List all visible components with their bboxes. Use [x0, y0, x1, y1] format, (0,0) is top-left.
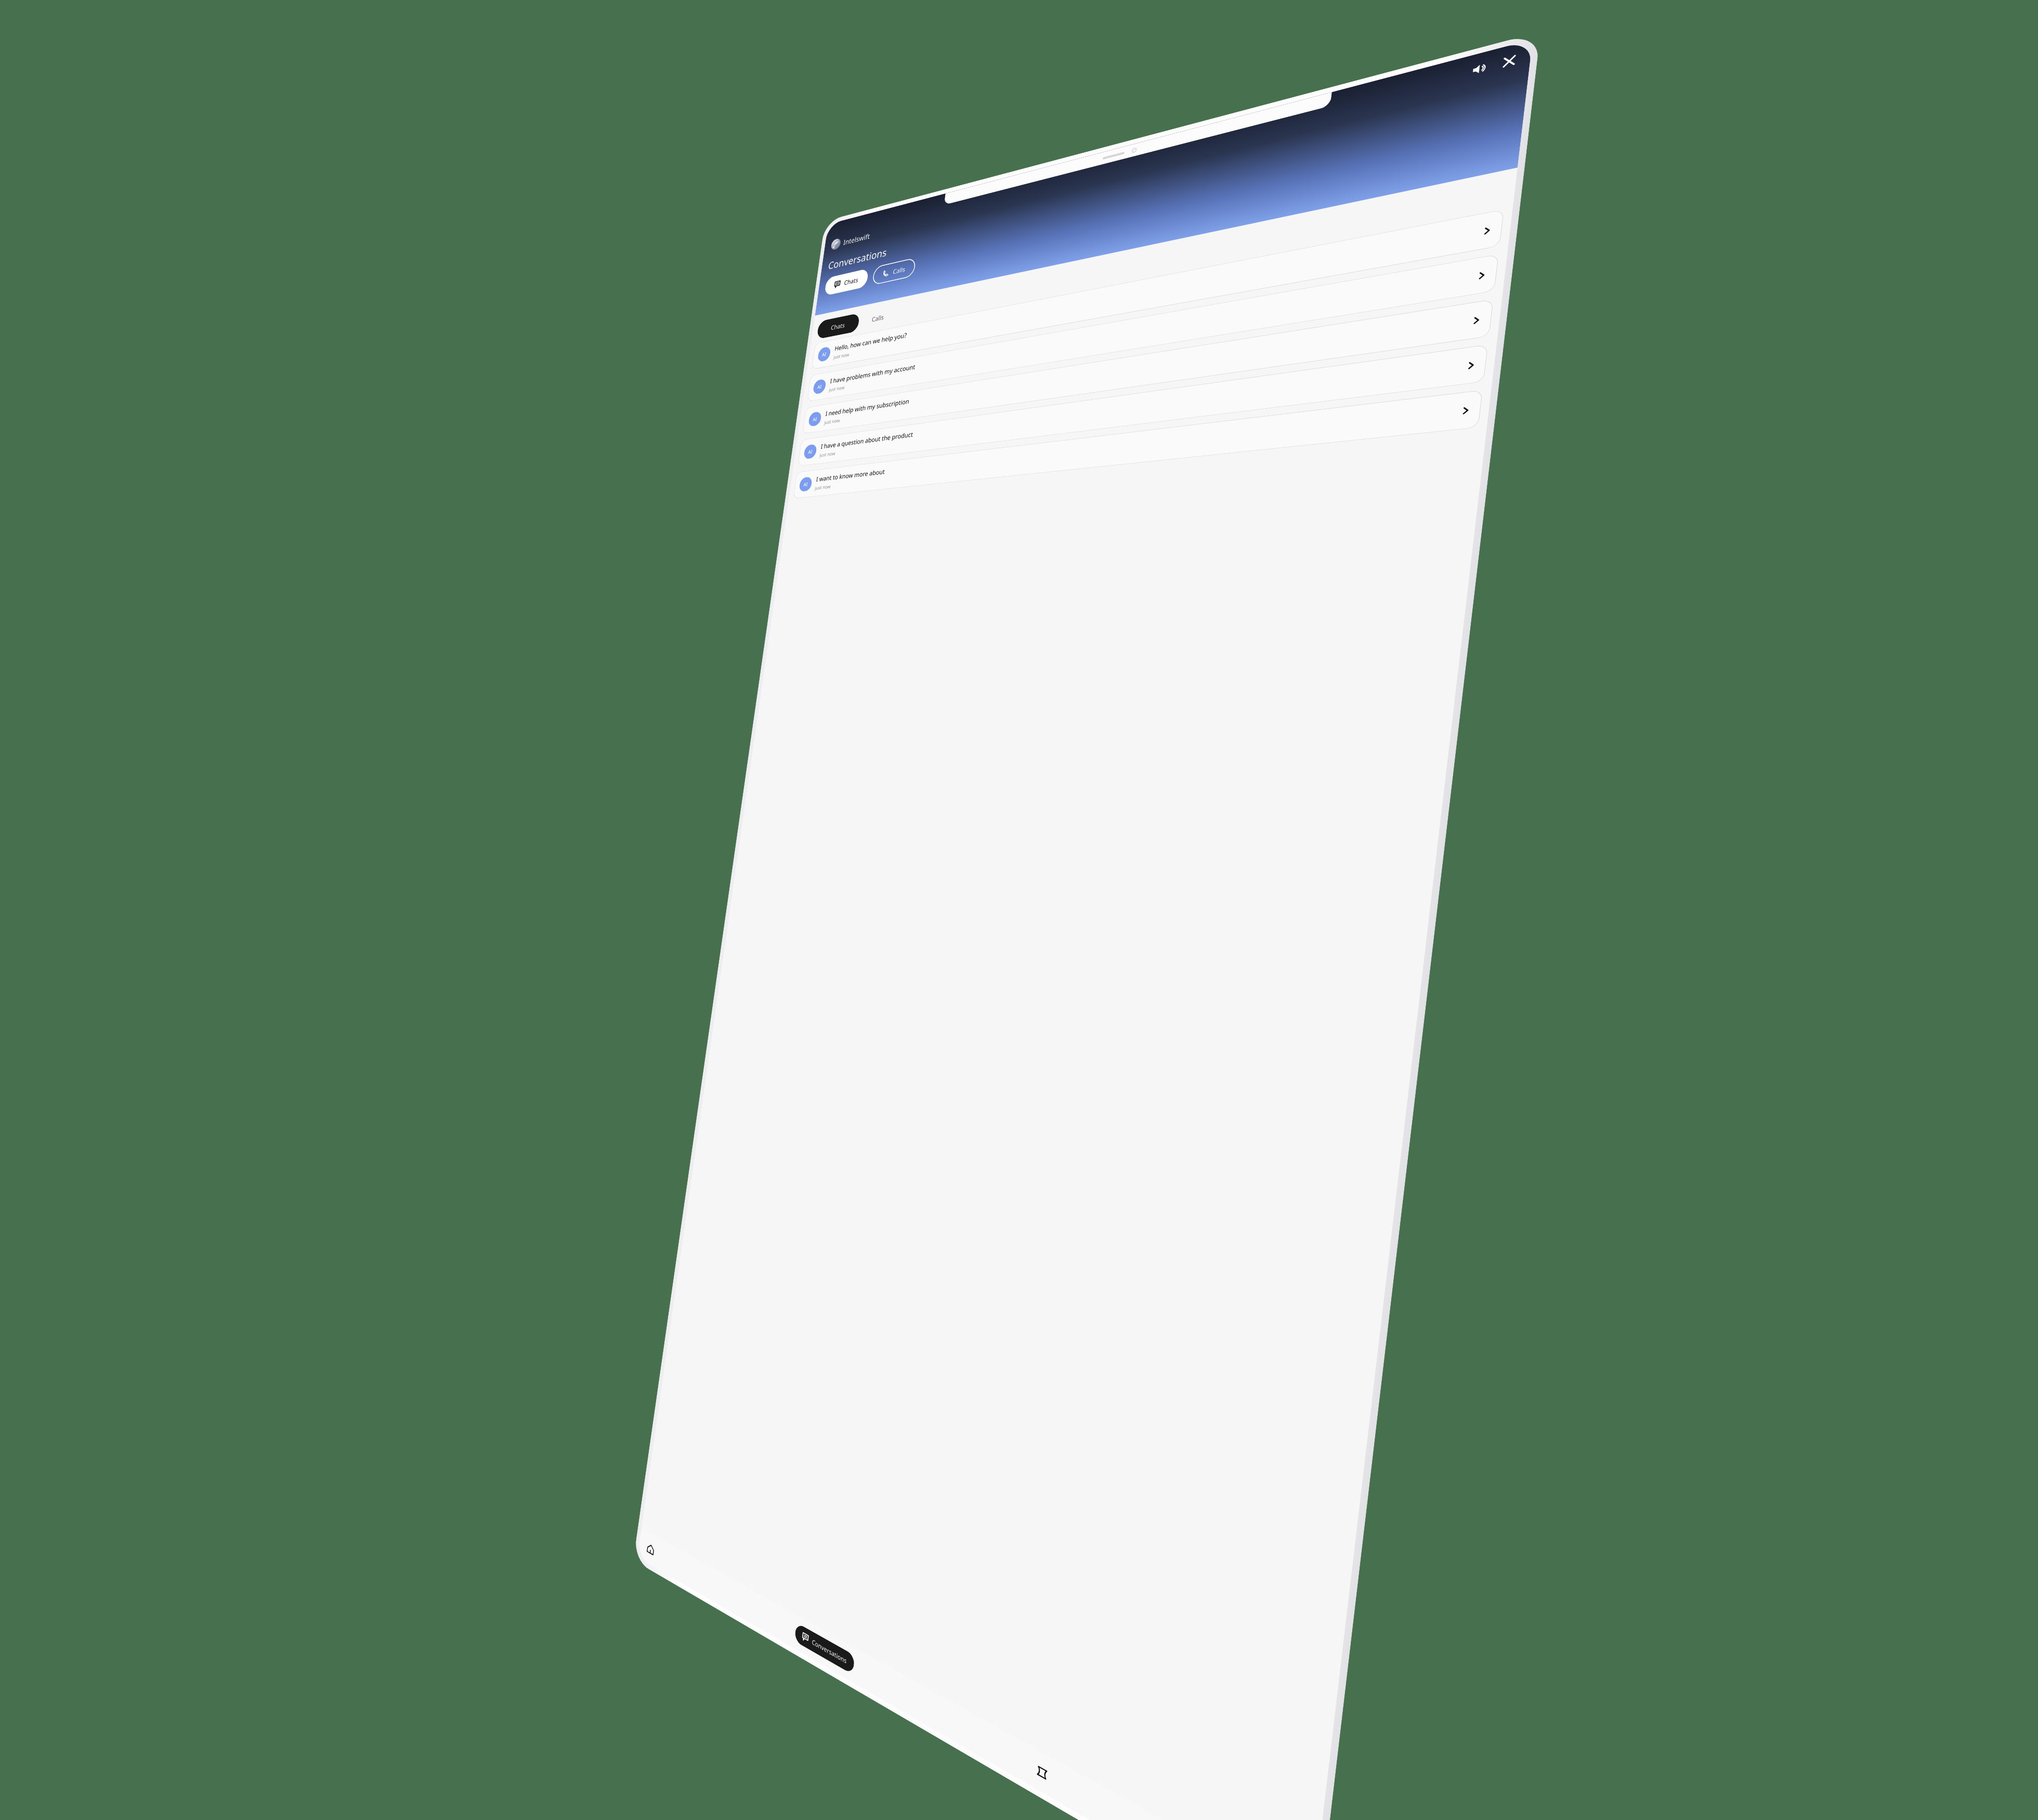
button[interactable]: Sound — [1471, 60, 1489, 78]
staticText: just now — [819, 450, 836, 458]
button[interactable]: AI — [807, 254, 1499, 402]
button[interactable]: AI — [802, 299, 1494, 434]
staticText: Calls — [892, 265, 906, 276]
staticText: Chats — [830, 321, 846, 332]
button[interactable]: Conversations — [794, 1623, 855, 1675]
staticText: Conversations — [828, 245, 888, 272]
button[interactable]: AI — [798, 344, 1488, 466]
staticText: AI — [822, 351, 827, 358]
staticText: just now — [829, 384, 845, 393]
button[interactable]: Chats — [816, 313, 860, 339]
button[interactable]: Close — [1500, 52, 1519, 70]
staticText: Hello, how can we help you? — [834, 331, 907, 353]
button[interactable]: Tickets — [1031, 1757, 1052, 1788]
staticText: I have problems with my account — [830, 362, 916, 385]
staticText: just now — [833, 351, 850, 360]
staticText: just now — [824, 417, 841, 426]
staticText: I have a question about the product — [820, 430, 914, 451]
staticText: I need help with my subscription — [825, 397, 910, 418]
staticText: AI — [808, 448, 813, 455]
button[interactable]: Calls — [872, 257, 916, 286]
staticText: Intelswift — [843, 231, 871, 247]
button[interactable]: AI — [793, 390, 1483, 499]
staticText: Conversations — [812, 1637, 847, 1665]
button[interactable]: Calls — [857, 305, 899, 331]
staticText: AI — [817, 383, 822, 390]
button[interactable]: Home — [644, 1538, 658, 1560]
button[interactable]: Chats — [824, 268, 869, 296]
staticText: Chats — [844, 275, 859, 287]
staticText: just now — [815, 483, 831, 491]
staticText: AI — [812, 416, 818, 423]
button[interactable]: AI — [811, 209, 1504, 370]
staticText: I want to know more about — [816, 467, 885, 483]
staticText: Calls — [871, 313, 885, 324]
staticText: AI — [803, 481, 808, 488]
